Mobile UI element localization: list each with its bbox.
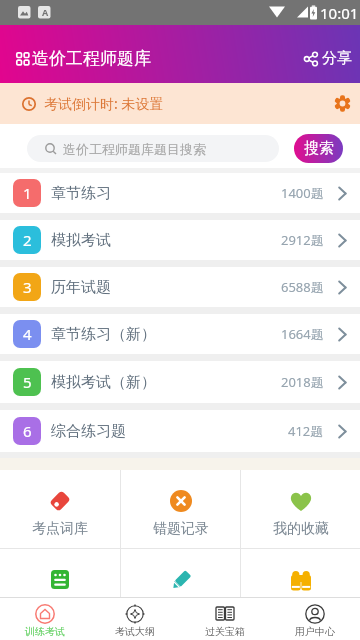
- button[interactable]: 3: [0, 267, 360, 307]
- button[interactable]: [121, 549, 240, 597]
- staticText: 考点词库: [32, 520, 88, 538]
- staticText: 造价工程师题库: [32, 48, 151, 69]
- staticText: 5: [23, 372, 32, 392]
- button[interactable]: 搜索: [294, 134, 343, 163]
- staticText: 2: [23, 230, 32, 250]
- button[interactable]: 6: [0, 410, 360, 452]
- button[interactable]: 考点词库: [0, 470, 120, 538]
- staticText: 章节练习: [51, 184, 111, 203]
- button[interactable]: 4: [0, 314, 360, 354]
- button[interactable]: [334, 95, 351, 112]
- staticText: 考试倒计时: 未设置: [44, 94, 164, 113]
- staticText: 6588题: [281, 278, 324, 296]
- staticText: 综合练习题: [51, 422, 126, 441]
- staticText: 模拟考试（新）: [51, 373, 156, 392]
- staticText: A: [42, 6, 49, 18]
- button[interactable]: 训练考试: [0, 598, 90, 640]
- staticText: 1: [23, 183, 32, 203]
- staticText: 分享: [322, 49, 352, 68]
- staticText: 章节练习（新）: [51, 325, 156, 344]
- button[interactable]: 过关宝箱: [180, 598, 270, 640]
- staticText: 训练考试: [25, 625, 65, 638]
- button[interactable]: [0, 549, 120, 597]
- staticText: 历年试题: [51, 278, 111, 297]
- button[interactable]: 用户中心: [270, 598, 360, 640]
- staticText: 过关宝箱: [205, 625, 245, 638]
- button[interactable]: 考试大纲: [90, 598, 180, 640]
- staticText: 造价工程师题库题目搜索: [63, 141, 206, 157]
- staticText: 2018题: [281, 373, 324, 391]
- staticText: 3: [23, 277, 32, 297]
- staticText: 错题记录: [153, 520, 209, 538]
- staticText: 我的收藏: [273, 520, 329, 538]
- staticText: 模拟考试: [51, 231, 111, 250]
- staticText: 1400题: [281, 184, 324, 202]
- button[interactable]: 2: [0, 220, 360, 260]
- staticText: 2912题: [281, 231, 324, 249]
- staticText: 4: [23, 324, 32, 344]
- staticText: 1664题: [281, 325, 324, 343]
- staticText: 搜索: [304, 139, 334, 158]
- button[interactable]: 分享: [304, 49, 352, 68]
- staticText: 6: [23, 421, 32, 441]
- button[interactable]: [241, 549, 360, 597]
- button[interactable]: 5: [0, 361, 360, 403]
- button[interactable]: 造价工程师题库题目搜索: [27, 135, 279, 162]
- button[interactable]: 错题记录: [121, 470, 240, 538]
- staticText: 412题: [288, 422, 324, 440]
- staticText: 考试大纲: [115, 625, 155, 638]
- staticText: 10:01: [320, 3, 359, 23]
- button[interactable]: 1: [0, 173, 360, 213]
- button[interactable]: 我的收藏: [241, 470, 360, 538]
- staticText: 用户中心: [295, 625, 335, 638]
